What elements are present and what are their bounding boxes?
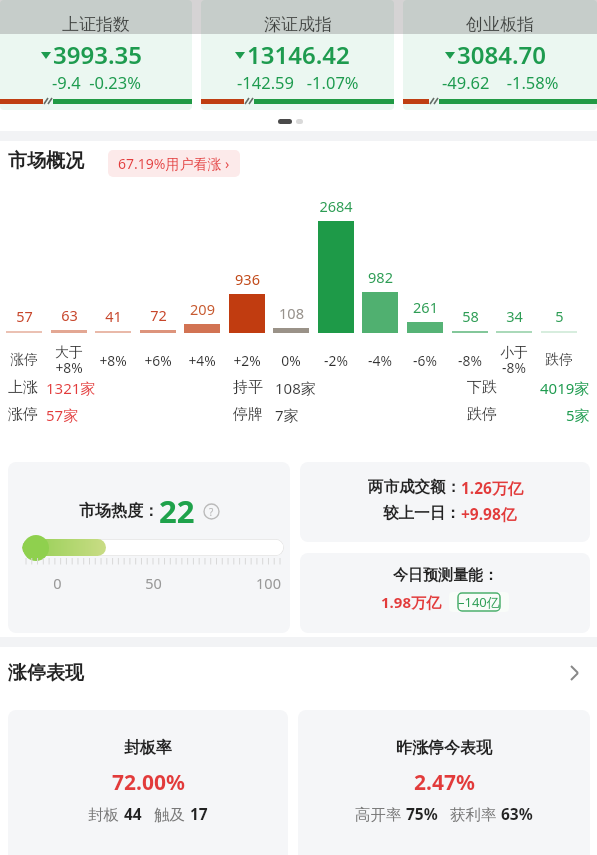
staticText: 7家 xyxy=(275,405,299,425)
staticText: 停牌 xyxy=(233,405,263,424)
staticText: 市场热度： xyxy=(79,501,159,521)
button[interactable]: 上证指数 xyxy=(0,0,192,110)
staticText: 63% xyxy=(501,803,533,824)
staticText: 0 xyxy=(53,573,62,593)
staticText: 17 xyxy=(190,803,208,824)
staticText: 市场概况 xyxy=(8,149,84,173)
staticText: 跌停 xyxy=(545,351,573,368)
staticText: 2.47% xyxy=(414,768,475,797)
button[interactable]: 昨涨停今表现 xyxy=(298,710,590,855)
staticText: 上证指数 xyxy=(62,14,130,35)
staticText: 大于 +8% xyxy=(55,344,83,377)
button[interactable]: 创业板指 xyxy=(403,0,597,110)
staticText: 41 xyxy=(105,306,122,326)
staticText: 100 xyxy=(256,573,281,593)
staticText: -8% xyxy=(458,351,482,370)
staticText: 72 xyxy=(150,305,167,325)
staticText: 67.19%用户看涨 › xyxy=(118,154,230,173)
staticText: +8% xyxy=(99,351,127,370)
staticText: 0% xyxy=(281,351,301,370)
staticText: -142.59 -1.07% xyxy=(237,71,359,93)
staticText: 63 xyxy=(61,305,78,325)
staticText: 今日预测量能： xyxy=(393,566,498,585)
staticText: +4% xyxy=(188,351,216,370)
staticText: 持平 xyxy=(233,378,263,397)
staticText: 3993.35 xyxy=(53,38,142,71)
staticText: 57 xyxy=(16,306,33,326)
staticText: 下跌 xyxy=(467,378,497,397)
staticText: –140亿 xyxy=(458,593,500,611)
staticText: 涨停 xyxy=(10,351,38,368)
staticText: 13146.42 xyxy=(247,38,350,71)
staticText: 108家 xyxy=(275,378,316,398)
staticText: 1.26万亿 xyxy=(461,477,523,498)
staticText: 5 xyxy=(555,306,564,326)
staticText: 3084.70 xyxy=(457,38,546,71)
staticText: -49.62 -1.58% xyxy=(442,71,559,93)
staticText: -9.4 -0.23% xyxy=(52,71,141,93)
staticText: 57家 xyxy=(46,405,79,425)
staticText: +6% xyxy=(144,351,172,370)
button[interactable]: 67.19%用户看涨 › xyxy=(108,150,240,177)
staticText: 261 xyxy=(413,297,438,317)
staticText: 44 xyxy=(124,803,142,824)
staticText: 108 xyxy=(279,303,304,323)
staticText: 小于 -8% xyxy=(500,344,528,377)
staticText: 936 xyxy=(235,269,260,289)
button[interactable]: 两市成交额： xyxy=(300,462,590,542)
staticText: 4019家 xyxy=(540,378,590,398)
staticText: 封板 xyxy=(88,803,124,824)
staticText: 涨停表现 xyxy=(8,661,84,685)
staticText: 34 xyxy=(506,306,523,326)
staticText: 创业板指 xyxy=(466,14,534,35)
button[interactable]: 封板率 xyxy=(8,710,288,855)
button[interactable]: 涨停表现 xyxy=(0,658,597,688)
staticText: 获利率 xyxy=(438,803,501,824)
staticText: +9.98亿 xyxy=(461,503,517,524)
staticText: 昨涨停今表现 xyxy=(396,738,492,758)
staticText: +2% xyxy=(233,351,261,370)
button[interactable]: 深证成指 xyxy=(201,0,394,110)
staticText: 982 xyxy=(368,267,393,287)
staticText: 1321家 xyxy=(46,378,96,398)
staticText: 涨停 xyxy=(8,405,38,424)
staticText: 72.00% xyxy=(112,768,185,797)
staticText: 209 xyxy=(190,299,215,319)
staticText: 上涨 xyxy=(8,378,38,397)
staticText: 75% xyxy=(406,803,438,824)
button[interactable]: 市场热度： xyxy=(8,462,290,633)
staticText: 两市成交额： xyxy=(368,477,461,497)
staticText: -4% xyxy=(368,351,392,370)
staticText: 22 xyxy=(159,490,195,532)
staticText: 高开率 xyxy=(355,803,406,824)
staticText: 1.98万亿 xyxy=(381,592,441,612)
staticText: 50 xyxy=(145,573,162,593)
staticText: 封板率 xyxy=(124,738,172,758)
staticText: ? xyxy=(209,505,214,519)
button[interactable]: 今日预测量能： xyxy=(300,553,590,633)
staticText: 2684 xyxy=(319,196,353,216)
staticText: -2% xyxy=(324,351,348,370)
staticText: 较上一日： xyxy=(383,503,461,523)
staticText: 触及 xyxy=(142,803,190,824)
staticText: 58 xyxy=(462,306,479,326)
staticText: 深证成指 xyxy=(264,14,332,35)
staticText: 5家 xyxy=(566,405,590,425)
staticText: 跌停 xyxy=(467,405,497,424)
staticText: -6% xyxy=(413,351,437,370)
